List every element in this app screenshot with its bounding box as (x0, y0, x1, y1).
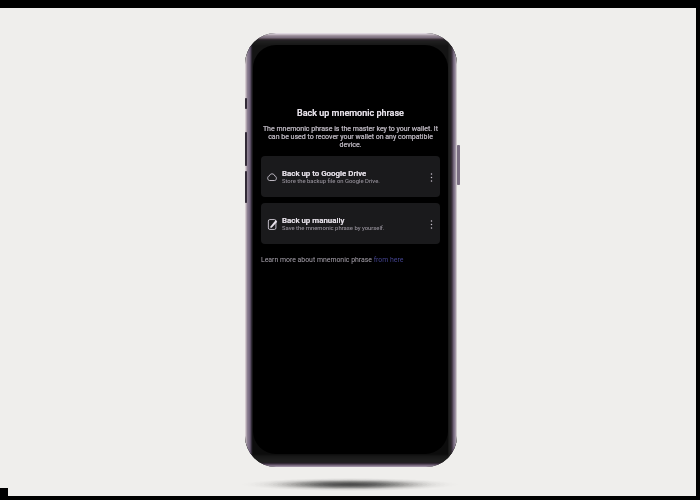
staticText: Save the mnemonic phrase by yourself. (282, 225, 385, 232)
button[interactable]: More options (424, 217, 438, 231)
staticText: The mnemonic phrase is the master key to… (262, 125, 439, 149)
button[interactable]: Learn more about mnemonic phrase from he… (261, 256, 404, 264)
staticText: Back up mnemonic phrase (253, 108, 448, 119)
button[interactable]: More options (424, 170, 438, 184)
staticText: Back up to Google Drive (282, 169, 367, 178)
button[interactable]: Back up manually (261, 203, 440, 244)
staticText: Store the backup file on Google Drive. (282, 178, 380, 185)
button[interactable]: Back up to Google Drive (261, 156, 440, 197)
staticText: Back up manually (282, 216, 345, 225)
